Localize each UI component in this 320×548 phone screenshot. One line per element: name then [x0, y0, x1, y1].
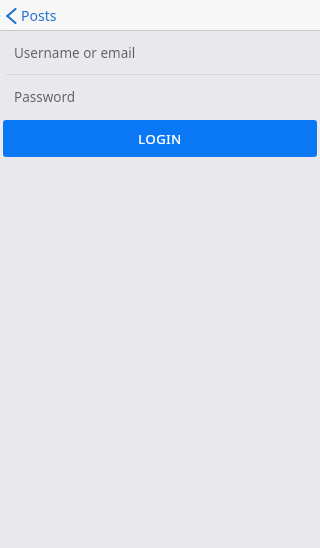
- staticText: Posts: [21, 6, 57, 25]
- staticText: Username or email: [14, 44, 136, 62]
- staticText: Password: [14, 88, 76, 106]
- button[interactable]: Back to Posts: [0, 3, 67, 28]
- button[interactable]: Username or email: [0, 31, 320, 74]
- staticText: LOGIN: [138, 130, 182, 148]
- button[interactable]: Password: [0, 75, 320, 118]
- button[interactable]: LOGIN: [3, 120, 317, 157]
